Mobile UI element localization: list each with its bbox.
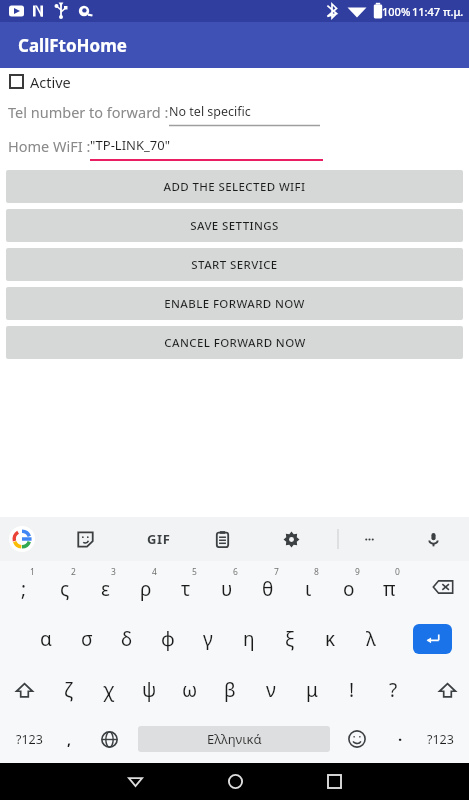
staticText: μ	[306, 677, 318, 703]
button[interactable]: ?	[375, 668, 411, 712]
staticText: Active	[30, 72, 71, 92]
staticText: 4	[152, 566, 157, 578]
staticText: δ	[121, 626, 133, 652]
button[interactable]: ν	[253, 668, 289, 712]
button[interactable]: Shift	[6, 668, 42, 712]
button[interactable]: ,	[52, 719, 86, 759]
button[interactable]: μ	[294, 668, 330, 712]
staticText: 1	[30, 566, 35, 578]
button[interactable]: 6	[209, 564, 245, 610]
staticText: START SERVICE	[191, 257, 278, 273]
button[interactable]: More options	[355, 525, 383, 553]
button[interactable]: Active	[0, 68, 469, 95]
staticText: α	[40, 626, 52, 652]
staticText: !	[349, 677, 355, 703]
button[interactable]: ?123	[6, 719, 52, 759]
staticText: φ	[161, 626, 175, 652]
button[interactable]: 2	[47, 564, 83, 610]
button[interactable]: 7	[250, 564, 286, 610]
button[interactable]: No tel specific	[169, 98, 320, 126]
staticText: 0	[395, 566, 400, 578]
staticText: ο	[343, 576, 355, 602]
staticText: ?	[389, 677, 398, 703]
staticText: ι	[305, 576, 312, 602]
staticText: ν	[266, 677, 276, 703]
button[interactable]: 5	[168, 564, 204, 610]
button[interactable]: ·	[383, 719, 417, 759]
staticText: κ	[325, 626, 336, 652]
button[interactable]: Google search	[8, 525, 36, 553]
staticText: θ	[262, 576, 274, 602]
button[interactable]: 3	[87, 564, 123, 610]
button[interactable]: 4	[128, 564, 164, 610]
button[interactable]: !	[334, 668, 370, 712]
staticText: π	[383, 576, 396, 602]
staticText: ?123	[427, 731, 454, 748]
staticText: CANCEL FORWARD NOW	[164, 335, 306, 351]
button[interactable]: Emoji	[340, 719, 374, 759]
button[interactable]: GIF	[147, 530, 171, 548]
staticText: CallFtoHome	[18, 34, 127, 57]
staticText: ENABLE FORWARD NOW	[164, 296, 305, 312]
staticText: 8	[314, 566, 319, 578]
staticText: ξ	[285, 626, 295, 652]
staticText: ·	[398, 729, 403, 749]
button[interactable]: 9	[331, 564, 367, 610]
staticText: ς	[60, 576, 70, 602]
button[interactable]: Keyboard settings	[277, 525, 305, 553]
button[interactable]: Backspace	[425, 565, 461, 609]
button[interactable]: Home	[215, 763, 255, 800]
staticText: χ	[103, 677, 115, 703]
staticText: 5	[192, 566, 197, 578]
button[interactable]: ζ	[50, 668, 86, 712]
button[interactable]: 8	[290, 564, 326, 610]
staticText: SAVE SETTINGS	[190, 218, 279, 234]
button[interactable]: σ	[69, 616, 105, 662]
button[interactable]: 1	[6, 564, 42, 610]
button[interactable]: χ	[91, 668, 127, 712]
button[interactable]: ADD THE SELECTED WIFI	[6, 170, 463, 203]
button[interactable]: Ελληνικά	[138, 726, 330, 752]
staticText: ;	[21, 576, 27, 602]
button[interactable]: Change language	[92, 719, 126, 759]
button[interactable]: Back	[115, 763, 155, 800]
staticText: ζ	[64, 677, 73, 703]
button[interactable]: γ	[190, 616, 226, 662]
button[interactable]: φ	[150, 616, 186, 662]
button[interactable]: SAVE SETTINGS	[6, 209, 463, 242]
staticText: τ	[181, 576, 191, 602]
staticText: 6	[233, 566, 238, 578]
button[interactable]: Voice input	[419, 525, 447, 553]
staticText: 3	[111, 566, 116, 578]
button[interactable]: CANCEL FORWARD NOW	[6, 326, 463, 359]
button[interactable]: Shift	[429, 668, 465, 712]
staticText: β	[224, 677, 236, 703]
button[interactable]: Clipboard	[208, 525, 236, 553]
button[interactable]: λ	[353, 616, 389, 662]
button[interactable]: START SERVICE	[6, 248, 463, 281]
staticText: λ	[366, 626, 376, 652]
staticText: ?123	[16, 731, 43, 748]
button[interactable]: ENABLE FORWARD NOW	[6, 287, 463, 320]
button[interactable]: Recent apps	[314, 763, 354, 800]
button[interactable]: α	[28, 616, 64, 662]
button[interactable]: ξ	[272, 616, 308, 662]
button[interactable]: ψ	[131, 668, 167, 712]
button[interactable]: "TP-LINK_70"	[90, 131, 323, 161]
staticText: 9	[355, 566, 360, 578]
button[interactable]: κ	[312, 616, 348, 662]
button[interactable]: β	[212, 668, 248, 712]
staticText: ρ	[140, 576, 152, 602]
staticText: γ	[203, 626, 213, 652]
staticText: Tel number to forward :	[8, 102, 169, 122]
button[interactable]: η	[231, 616, 267, 662]
button[interactable]: Stickers	[71, 525, 99, 553]
button[interactable]: 0	[371, 564, 407, 610]
button[interactable]: ω	[172, 668, 208, 712]
button[interactable]: Enter	[413, 624, 452, 654]
staticText: ,	[67, 730, 71, 749]
button[interactable]: ?123	[417, 719, 463, 759]
staticText: υ	[221, 576, 233, 602]
button[interactable]: δ	[109, 616, 145, 662]
staticText: Home WiFI :	[8, 136, 91, 156]
